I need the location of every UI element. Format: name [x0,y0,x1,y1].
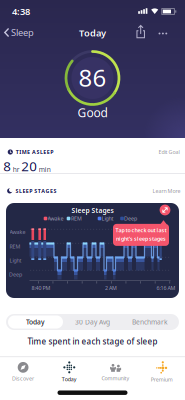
staticText: Sleep Stages [71,206,113,215]
staticText: Tap to check out last [115,227,166,234]
button[interactable]: Community [102,362,130,382]
staticText: night's sleep stages [116,235,166,242]
staticText: Time spent in each stage of sleep [27,336,157,347]
staticText: SLEEP STAGES [15,187,56,195]
button[interactable]: Sleep [4,26,34,39]
staticText: hr [13,165,20,174]
staticText: 2 AM [105,284,117,292]
staticText: min [39,165,51,174]
staticText: Light [9,257,21,264]
staticText: Sleep [11,26,34,39]
button[interactable]: Premium [151,361,173,383]
staticText: Today [26,318,45,326]
button[interactable]: 30 Day Avg [64,314,120,329]
staticText: Discover [12,375,34,382]
staticText: 86 [78,62,106,93]
staticText: REM [9,243,20,250]
staticText: 8:40 PM [31,284,50,292]
staticText: Today [79,27,106,39]
button[interactable]: Learn More [152,187,180,195]
button[interactable] [6,203,179,298]
staticText: 30 Day Avg [75,318,110,326]
staticText: Good [77,104,107,120]
staticText: Awake [9,228,25,236]
button[interactable]: Edit Goal [158,148,179,156]
button[interactable]: Today [62,361,77,383]
button[interactable]: Today [8,315,63,328]
button[interactable]: Tap to check out last [113,220,169,246]
staticText: Premium [151,376,173,383]
staticText: Awake [47,215,63,222]
staticText: 20 [21,157,37,175]
staticText: 8 [3,157,11,175]
staticText: Community [102,375,130,382]
staticText: 6:16 AM [156,284,175,292]
button[interactable]: Discover [12,362,34,382]
staticText: REM [71,215,82,222]
staticText: Light [101,215,113,222]
staticText: Today [62,376,77,383]
staticText: Deep [9,271,22,278]
button[interactable]: Share [136,25,145,38]
staticText: Learn More [152,187,180,195]
button[interactable]: Benchmark [122,314,178,329]
staticText: 4:38 [12,5,30,18]
staticText: Edit Goal [158,148,179,156]
staticText: Benchmark [132,318,168,326]
button[interactable]: Expand chart [160,205,170,215]
staticText: Deep [124,215,137,222]
staticText: TIME ASLEEP [16,148,53,156]
button[interactable]: More [158,32,167,34]
